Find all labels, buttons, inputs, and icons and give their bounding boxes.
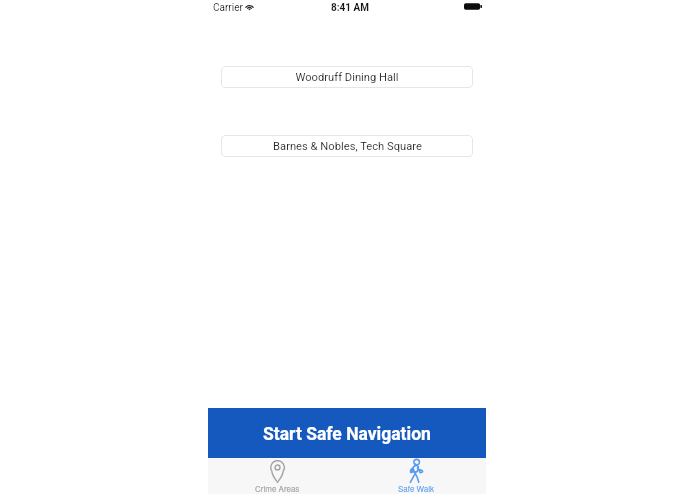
- staticText: Crime Areas: [255, 483, 300, 494]
- staticText: Start Safe Navigation: [263, 424, 431, 445]
- staticText: Barnes & Nobles, Tech Square: [273, 140, 422, 153]
- staticText: Carrier: [213, 2, 243, 14]
- button[interactable]: Start Safe Navigation: [208, 408, 486, 458]
- staticText: 8:41 AM: [331, 2, 369, 14]
- button[interactable]: Safe Walk: [347, 458, 486, 494]
- button[interactable]: Crime Areas: [208, 458, 347, 494]
- button[interactable]: Barnes & Nobles, Tech Square: [221, 135, 473, 157]
- staticText: Safe Walk: [398, 483, 435, 494]
- button[interactable]: Woodruff Dining Hall: [221, 66, 473, 88]
- staticText: Woodruff Dining Hall: [295, 71, 399, 84]
